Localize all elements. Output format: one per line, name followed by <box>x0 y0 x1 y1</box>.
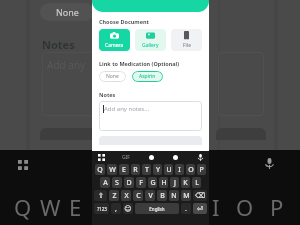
button[interactable]: B <box>157 190 167 201</box>
staticText: ?123 <box>97 206 107 212</box>
staticText: H <box>161 178 167 188</box>
button[interactable]: Y <box>153 164 162 175</box>
staticText: ☺ <box>124 205 132 213</box>
button[interactable]: T <box>142 164 151 175</box>
button[interactable]: Q <box>95 164 105 175</box>
button[interactable]: Apps <box>97 153 105 161</box>
staticText: Notes <box>42 37 75 52</box>
staticText: W <box>109 165 116 175</box>
staticText: O <box>236 192 254 222</box>
button[interactable]: H <box>159 177 168 188</box>
button[interactable]: P <box>197 164 206 175</box>
staticText: P <box>199 165 204 175</box>
staticText: , <box>115 204 117 214</box>
staticText: N <box>171 191 177 201</box>
button[interactable]: File <box>171 29 202 51</box>
button[interactable]: G <box>148 177 157 188</box>
staticText: Gallery <box>142 42 159 49</box>
button[interactable]: U <box>164 164 173 175</box>
staticText: E <box>122 165 126 175</box>
staticText: GIF <box>122 154 130 161</box>
button[interactable]: , <box>111 203 121 214</box>
staticText: K <box>183 178 188 188</box>
staticText: O <box>188 165 194 175</box>
staticText: None <box>106 73 119 80</box>
button[interactable]: Camera <box>99 29 130 51</box>
button[interactable]: W <box>107 164 117 175</box>
button[interactable]: ☺ <box>123 203 133 214</box>
button[interactable]: L <box>192 177 201 188</box>
staticText: S <box>115 178 119 188</box>
staticText: G <box>150 178 156 188</box>
staticText: Y <box>156 165 160 175</box>
staticText: U <box>166 165 172 175</box>
staticText: D <box>126 178 132 188</box>
staticText: . <box>185 204 187 214</box>
staticText: C <box>136 191 141 201</box>
staticText: Add any <box>47 58 86 72</box>
button[interactable]: A <box>100 177 110 188</box>
staticText: T <box>145 165 149 175</box>
button[interactable]: V <box>145 190 155 201</box>
button[interactable]: O <box>186 164 195 175</box>
staticText: X <box>124 191 129 201</box>
staticText: ⇧ <box>98 192 104 200</box>
button[interactable]: Z <box>109 190 119 201</box>
button[interactable]: D <box>124 177 134 188</box>
staticText: English <box>149 206 165 212</box>
staticText: V <box>148 191 153 201</box>
button[interactable]: K <box>181 177 190 188</box>
button[interactable]: Gallery <box>135 29 166 51</box>
staticText: Aspirin <box>139 73 156 80</box>
button[interactable]: ⏎ <box>193 203 207 214</box>
staticText: Link to Medication (Optional) <box>99 60 180 67</box>
staticText: Z <box>112 191 117 201</box>
button[interactable]: F <box>136 177 146 188</box>
button[interactable]: None <box>106 71 119 82</box>
button[interactable]: Settings <box>147 153 155 161</box>
staticText: P <box>270 192 284 222</box>
staticText: None <box>56 6 79 18</box>
staticText: Q <box>97 165 103 175</box>
button[interactable]: R <box>131 164 140 175</box>
button[interactable]: I <box>175 164 184 175</box>
staticText: M <box>183 191 190 201</box>
button[interactable]: C <box>133 190 143 201</box>
staticText: A <box>103 178 108 188</box>
staticText: Q <box>14 192 32 222</box>
staticText: W <box>40 192 61 222</box>
staticText: B <box>160 191 165 201</box>
button[interactable]: J <box>170 177 179 188</box>
button[interactable]: ⇧ <box>94 190 107 201</box>
staticText: Camera <box>105 42 124 49</box>
button[interactable]: E <box>119 164 129 175</box>
staticText: File <box>183 42 191 49</box>
button[interactable]: Add any notes... <box>99 101 202 131</box>
button[interactable]: S <box>112 177 122 188</box>
staticText: L <box>195 178 199 188</box>
staticText: Choose Document <box>99 18 149 25</box>
staticText: I <box>212 192 220 222</box>
staticText: ⏎ <box>197 205 203 213</box>
button[interactable]: Voice input <box>196 153 204 161</box>
button[interactable]: English <box>135 203 179 214</box>
staticText: J <box>174 178 176 188</box>
button[interactable]: M <box>181 190 191 201</box>
button[interactable]: ⌫ <box>193 190 207 201</box>
button[interactable]: X <box>121 190 131 201</box>
button[interactable]: . <box>181 203 191 214</box>
staticText: I <box>178 165 181 175</box>
button[interactable]: N <box>169 190 179 201</box>
staticText: ⌫ <box>195 192 205 200</box>
button[interactable]: ?123 <box>94 203 109 214</box>
button[interactable]: Aspirin <box>139 71 156 82</box>
staticText: E <box>69 192 82 222</box>
staticText: Add any notes... <box>104 105 150 113</box>
button[interactable]: Stickers <box>171 153 179 161</box>
staticText: F <box>139 178 143 188</box>
staticText: Notes <box>99 91 116 98</box>
staticText: R <box>133 165 138 175</box>
